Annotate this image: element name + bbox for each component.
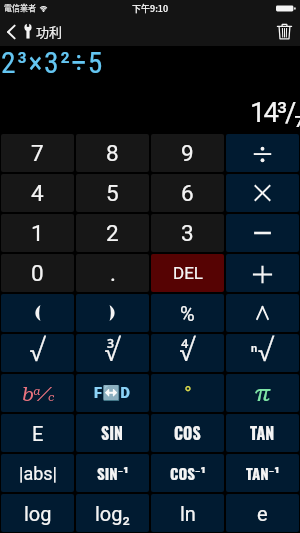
button[interactable]: 5 (76, 174, 149, 212)
staticText: 功利 (36, 22, 63, 41)
staticText: DEL (173, 263, 203, 283)
staticText: ∛ (104, 335, 121, 371)
button[interactable]: TAN⁻¹ (226, 454, 299, 492)
staticText: 7 (31, 140, 44, 166)
staticText: TAN (250, 421, 275, 445)
button[interactable]: Divide (226, 134, 299, 172)
button[interactable]: 8 (76, 134, 149, 172)
staticText: |abs| (19, 463, 57, 484)
button[interactable]: 9 (151, 134, 224, 172)
staticText: ∜ (179, 335, 196, 371)
staticText: 8 (106, 140, 119, 166)
button[interactable]: log₂ (76, 494, 149, 532)
button[interactable]: log (1, 494, 74, 532)
staticText: n√ (251, 335, 274, 371)
button[interactable]: % (151, 294, 224, 332)
staticText: % (180, 302, 195, 325)
staticText: ba⁄c (22, 382, 54, 405)
staticText: TAN⁻¹ (246, 462, 280, 484)
staticText: 2³×3²÷5 (1, 46, 104, 81)
button[interactable]: Open parenthesis (1, 294, 74, 332)
button[interactable]: 1 (1, 214, 74, 252)
staticText: SIN (101, 421, 124, 445)
staticText: E (32, 422, 44, 445)
button[interactable]: 0 (1, 254, 74, 292)
staticText: 5 (106, 180, 119, 206)
button[interactable]: TAN (226, 414, 299, 452)
staticText: ln (180, 502, 196, 525)
staticText: 1 (31, 220, 44, 246)
staticText: 電信業者 (4, 2, 36, 14)
staticText: 4 (31, 180, 44, 206)
staticText: 0 (31, 260, 44, 286)
button[interactable]: √ (1, 334, 74, 372)
staticText: 9 (181, 140, 194, 166)
staticText: log (24, 502, 52, 525)
button[interactable]: Delete (269, 23, 300, 40)
button[interactable]: ∜ (151, 334, 224, 372)
button[interactable]: COS⁻¹ (151, 454, 224, 492)
staticText: ° (184, 382, 192, 407)
button[interactable]: Plus (226, 254, 299, 292)
other: Back (7, 24, 16, 40)
staticText: 6 (181, 180, 194, 206)
staticText: SIN⁻¹ (97, 462, 129, 484)
button[interactable]: 6 (151, 174, 224, 212)
button[interactable]: Minus (226, 214, 299, 252)
staticText: COS (174, 421, 201, 445)
button[interactable]: e (226, 494, 299, 532)
button[interactable]: Back (0, 22, 69, 41)
staticText: 下午9:10 (132, 2, 169, 15)
button[interactable]: SIN (76, 414, 149, 452)
staticText: COS⁻¹ (170, 462, 206, 484)
button[interactable]: |abs| (1, 454, 74, 492)
button[interactable]: SIN⁻¹ (76, 454, 149, 492)
button[interactable]: ∛ (76, 334, 149, 372)
button[interactable]: 2 (76, 214, 149, 252)
button[interactable]: Power (226, 294, 299, 332)
button[interactable]: 3 (151, 214, 224, 252)
button[interactable]: ° (151, 374, 224, 412)
button[interactable]: . (76, 254, 149, 292)
staticText: 14³/₇ (250, 96, 300, 128)
button[interactable]: ba⁄c (1, 374, 74, 412)
button[interactable]: DEL (151, 254, 224, 292)
staticText: F↔D (94, 385, 131, 402)
staticText: √ (29, 335, 46, 371)
button[interactable]: COS (151, 414, 224, 452)
button[interactable]: Close parenthesis (76, 294, 149, 332)
button[interactable]: 7 (1, 134, 74, 172)
button[interactable]: E (1, 414, 74, 452)
staticText: 3 (181, 220, 194, 246)
staticText: . (110, 260, 116, 286)
staticText: e (257, 502, 268, 525)
button[interactable]: n√ (226, 334, 299, 372)
button[interactable]: π (226, 374, 299, 412)
button[interactable]: F↔D (76, 374, 149, 412)
button[interactable]: ln (151, 494, 224, 532)
staticText: log₂ (95, 502, 130, 525)
button[interactable]: 4 (1, 174, 74, 212)
button[interactable]: Multiply (226, 174, 299, 212)
staticText: π (254, 379, 272, 407)
staticText: 2 (106, 220, 119, 246)
